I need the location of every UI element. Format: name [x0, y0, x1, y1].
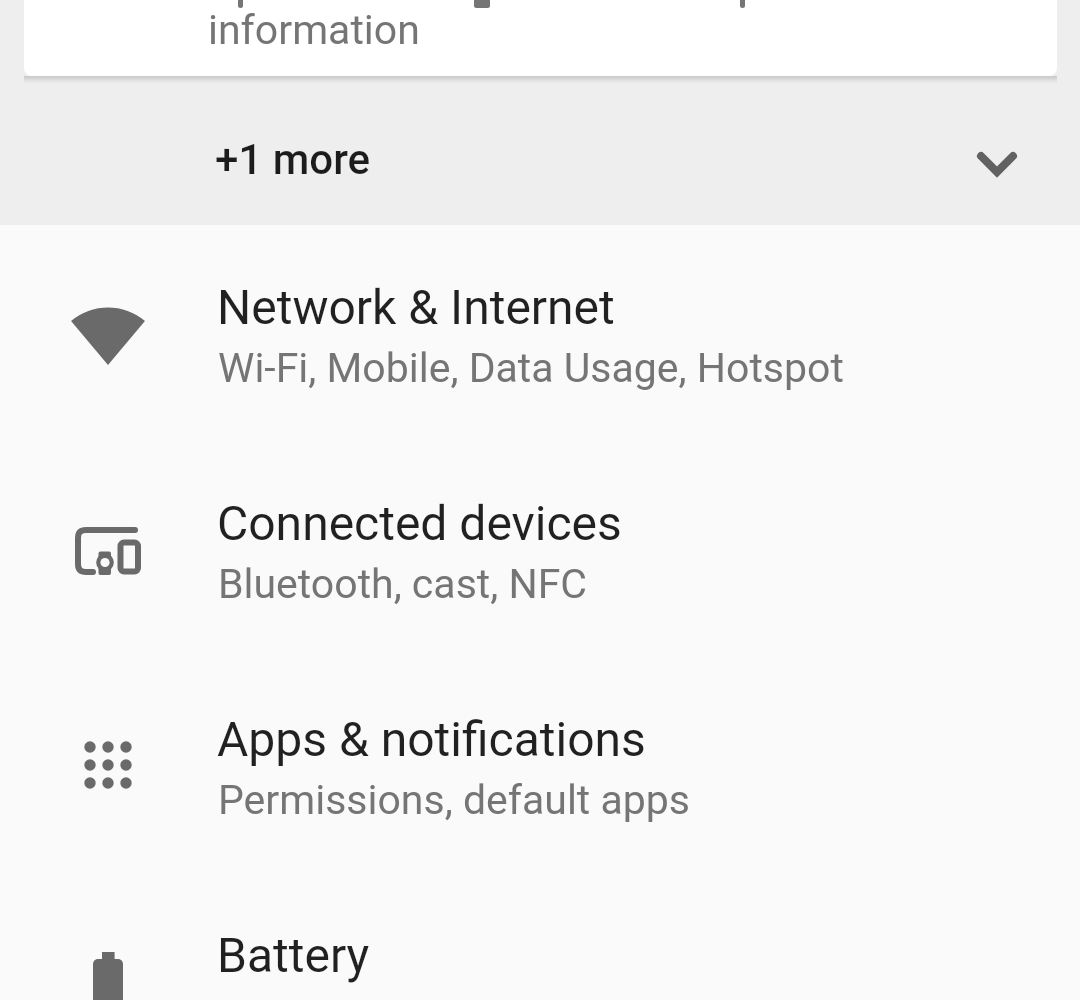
button[interactable]: +1 more: [0, 83, 1080, 225]
button[interactable]: information: [24, 0, 1057, 76]
staticText: Wi-Fi, Mobile, Data Usage, Hotspot: [218, 344, 844, 392]
staticText: information: [208, 6, 420, 54]
button[interactable]: Apps & notifications: [0, 657, 1080, 873]
staticText: +1 more: [215, 135, 371, 184]
staticText: Bluetooth, cast, NFC: [218, 560, 588, 608]
button[interactable]: Connected devices: [0, 441, 1080, 657]
staticText: Permissions, default apps: [218, 776, 690, 824]
staticText: Connected devices: [217, 495, 622, 551]
staticText: Network & Internet: [217, 279, 615, 335]
staticText: Apps & notifications: [217, 711, 646, 767]
button[interactable]: Network & Internet: [0, 225, 1080, 441]
staticText: Battery: [217, 927, 370, 983]
button[interactable]: Battery: [0, 873, 1080, 1000]
